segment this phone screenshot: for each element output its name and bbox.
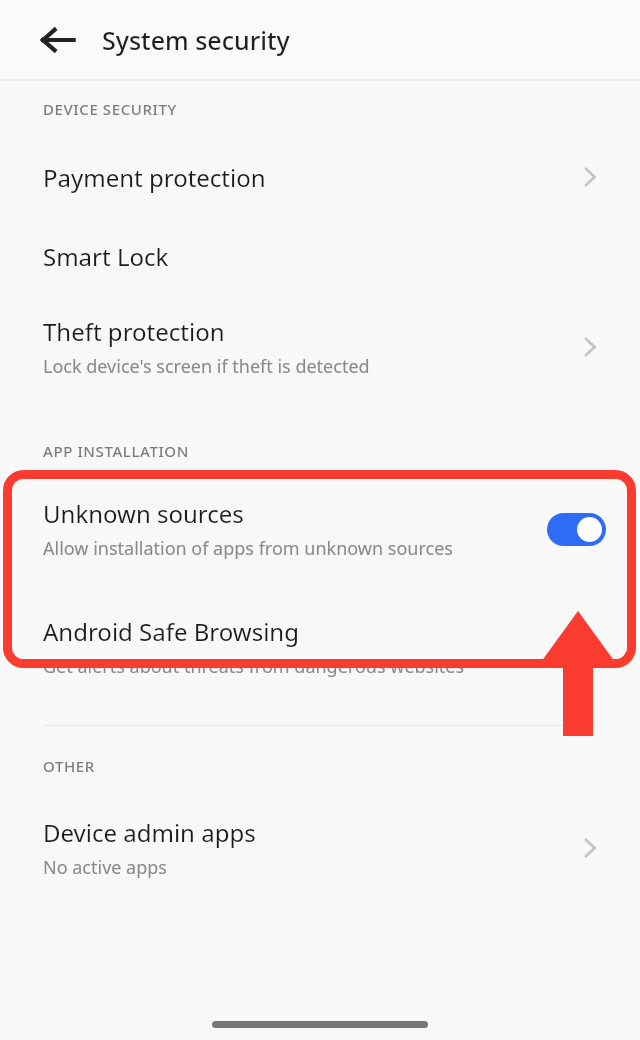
staticText: Get alerts about threats from dangerous … <box>43 654 465 679</box>
staticText: Unknown sources <box>43 497 244 530</box>
staticText: Payment protection <box>43 161 266 194</box>
staticText: Device admin apps <box>43 816 256 849</box>
button[interactable]: Smart Lock <box>0 213 640 299</box>
button[interactable]: Back <box>34 16 82 64</box>
button[interactable]: Unknown sources toggle, on <box>547 513 606 546</box>
button[interactable]: Unknown sources <box>0 481 640 577</box>
staticText: Android Safe Browsing <box>43 615 299 648</box>
staticText: Theft protection <box>43 315 225 348</box>
button[interactable]: Payment protection <box>0 141 640 213</box>
staticText: Lock device's screen if theft is detecte… <box>43 354 370 379</box>
staticText: Allow installation of apps from unknown … <box>43 536 453 561</box>
button[interactable]: Device admin apps <box>0 800 640 896</box>
staticText: APP INSTALLATION <box>43 441 189 461</box>
button[interactable]: Theft protection <box>0 299 640 395</box>
staticText: Smart Lock <box>43 240 169 273</box>
staticText: No active apps <box>43 855 167 880</box>
button[interactable]: Android Safe Browsing <box>0 599 640 695</box>
staticText: OTHER <box>43 756 95 776</box>
staticText: System security <box>102 23 290 57</box>
staticText: DEVICE SECURITY <box>43 99 177 119</box>
